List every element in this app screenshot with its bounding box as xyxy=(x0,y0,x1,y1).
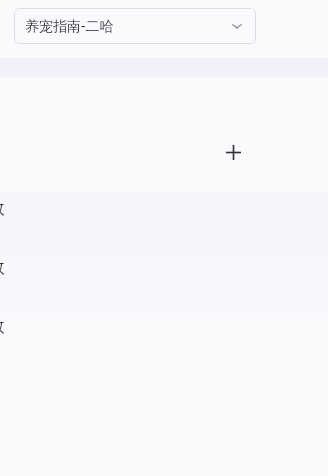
staticText: 数 xyxy=(0,257,5,278)
staticText: 数 xyxy=(0,198,5,219)
staticText: 数 xyxy=(0,316,5,337)
button[interactable] xyxy=(0,254,328,313)
button[interactable]: Add xyxy=(221,140,245,164)
button[interactable] xyxy=(0,192,328,254)
button[interactable]: 养宠指南-二哈 xyxy=(14,8,256,44)
button[interactable] xyxy=(0,313,328,372)
staticText: 养宠指南-二哈 xyxy=(25,16,114,35)
